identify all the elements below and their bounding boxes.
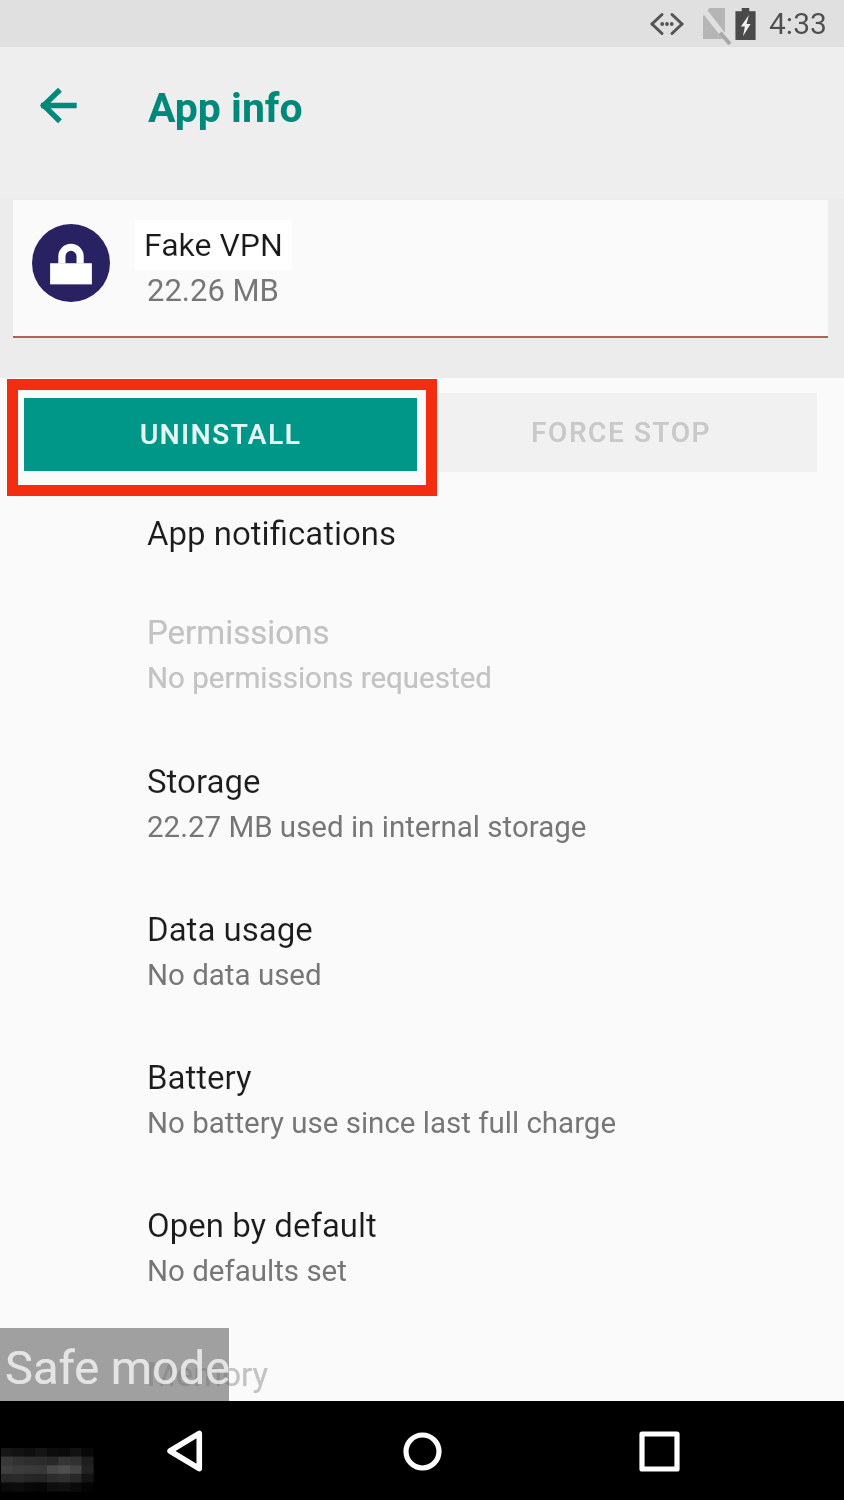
button[interactable]: Back — [140, 1406, 230, 1496]
staticText: 22.27 MB used in internal storage — [147, 810, 587, 845]
button[interactable]: Battery — [0, 1054, 844, 1149]
staticText: Permissions — [147, 613, 330, 652]
button[interactable]: Memory — [0, 1351, 844, 1402]
button[interactable]: Open by default — [0, 1202, 844, 1297]
button[interactable]: Home — [377, 1406, 467, 1496]
button[interactable]: App notifications — [0, 510, 844, 561]
staticText: Storage — [147, 762, 261, 801]
button[interactable]: Storage — [0, 758, 844, 853]
staticText: Open by default — [147, 1206, 377, 1245]
staticText: Memory — [147, 1355, 269, 1394]
staticText: 4:33 — [769, 6, 827, 41]
button[interactable]: Recent apps — [614, 1406, 704, 1496]
button[interactable]: Fake VPN — [13, 200, 828, 338]
staticText: App notifications — [147, 514, 397, 553]
staticText: Data usage — [147, 910, 313, 949]
staticText: FORCE STOP — [531, 416, 712, 449]
button[interactable]: Permissions — [0, 609, 844, 704]
staticText: 22.26 MB — [147, 272, 279, 308]
staticText: No battery use since last full charge — [147, 1106, 617, 1141]
staticText: Battery — [147, 1058, 252, 1097]
staticText: Fake VPN — [144, 226, 283, 264]
staticText: No data used — [147, 958, 322, 993]
staticText: No permissions requested — [147, 661, 492, 696]
staticText: App info — [148, 84, 303, 132]
button[interactable]: FORCE STOP — [426, 393, 817, 472]
staticText: Safe mode — [5, 1340, 231, 1395]
button[interactable]: Data usage — [0, 906, 844, 1001]
staticText: No defaults set — [147, 1254, 347, 1289]
staticText: UNINSTALL — [140, 418, 302, 451]
button[interactable]: Navigate up — [22, 69, 94, 141]
button[interactable]: UNINSTALL — [24, 398, 417, 471]
